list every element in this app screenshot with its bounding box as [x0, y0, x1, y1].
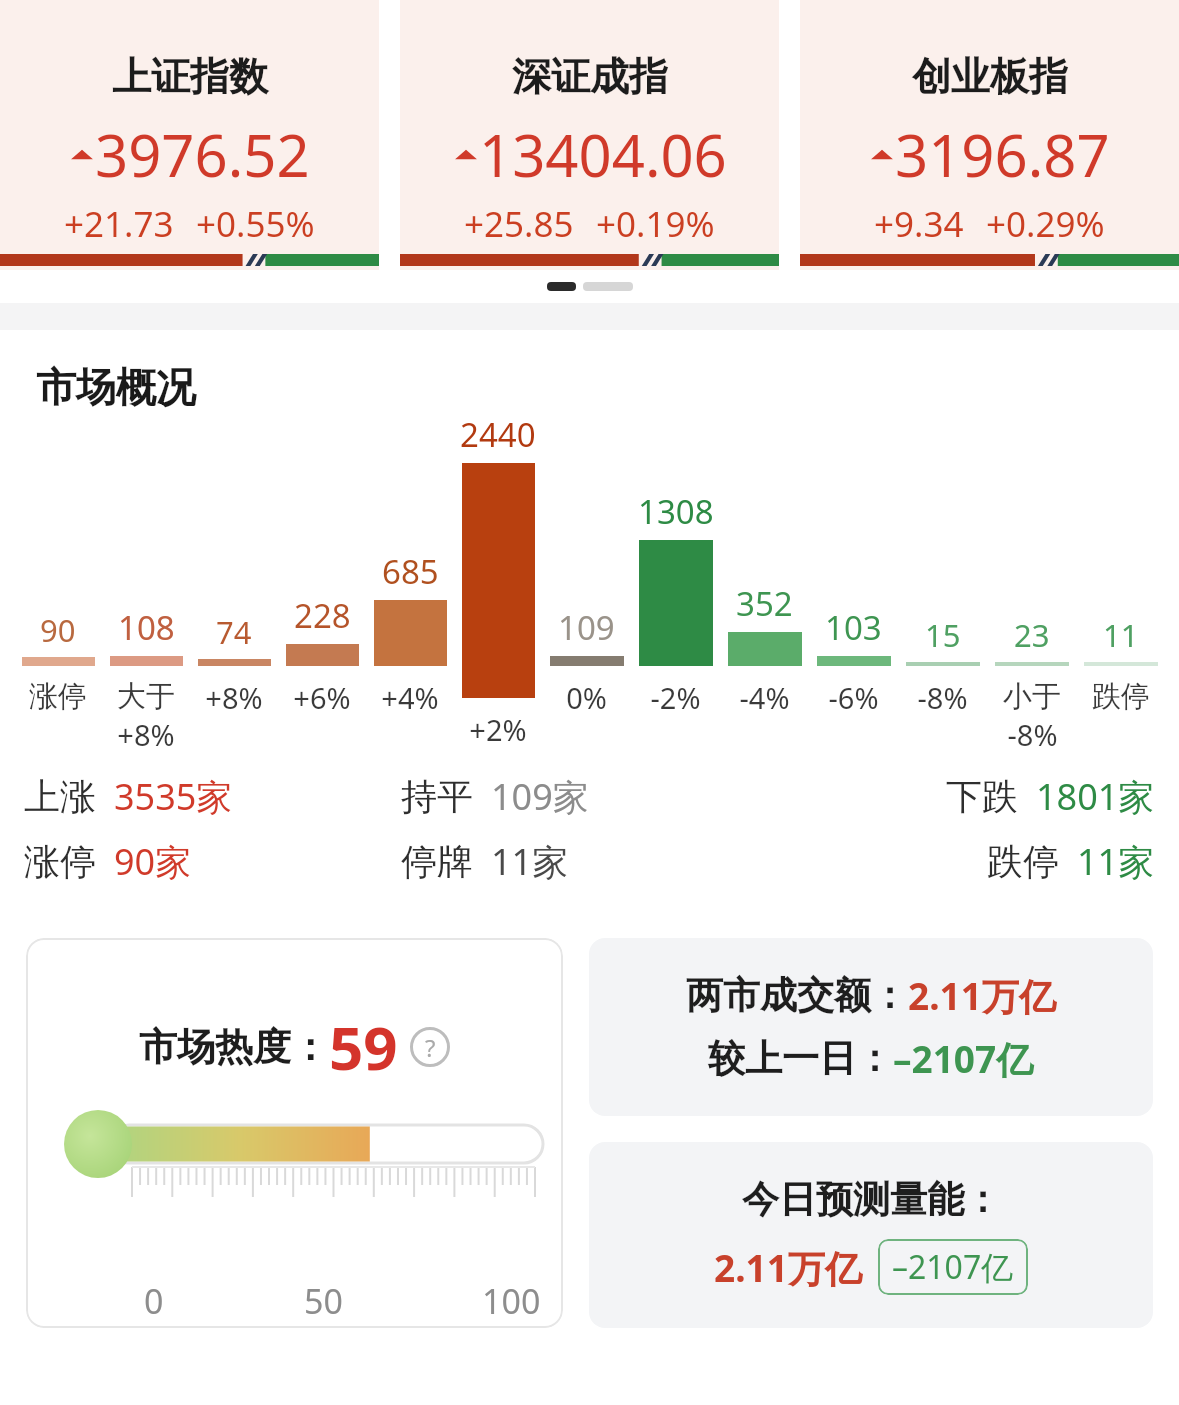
staticText: 3535家: [114, 772, 233, 821]
staticText: –2107亿: [893, 1033, 1034, 1084]
staticText: 上涨: [24, 774, 96, 819]
staticText: +25.85: [464, 200, 574, 248]
staticText: 深证成指: [512, 52, 668, 101]
staticText: -4%: [739, 678, 790, 717]
staticText: +0.55%: [196, 200, 315, 248]
staticText: +21.73: [64, 200, 174, 248]
staticText: 1801家: [1036, 772, 1155, 821]
button[interactable]: 创业板指: [800, 0, 1179, 270]
button[interactable]: 上证指数: [0, 0, 379, 270]
staticText: 103: [825, 605, 882, 650]
staticText: 0%: [566, 678, 607, 717]
staticText: 2440: [460, 412, 536, 457]
staticText: 涨停: [29, 678, 87, 715]
staticText: 352: [736, 581, 793, 626]
staticText: 90家: [114, 837, 192, 886]
staticText: 685: [382, 549, 439, 594]
staticText: -8%: [917, 678, 968, 717]
button[interactable]: 今日预测量能：: [589, 1142, 1153, 1328]
staticText: -2%: [650, 678, 701, 717]
staticText: 13404.06: [479, 115, 727, 194]
staticText: -6%: [828, 678, 879, 717]
staticText: 较上一日：: [708, 1035, 893, 1082]
staticText: 50: [304, 1278, 343, 1324]
staticText: 停牌: [401, 839, 473, 884]
staticText: +9.34: [874, 200, 964, 248]
staticText: 2.11万亿: [714, 1242, 862, 1293]
staticText: 11家: [491, 837, 569, 886]
staticText: 11: [1103, 614, 1139, 656]
staticText: 59: [329, 1006, 398, 1088]
staticText: 跌停: [1092, 678, 1150, 715]
button[interactable]: 市场热度：: [26, 938, 563, 1328]
staticText: 2.11万亿: [908, 970, 1056, 1021]
button[interactable]: 帮助: [410, 1027, 450, 1067]
staticText: 228: [294, 593, 351, 638]
staticText: 108: [118, 605, 175, 650]
staticText: 109: [558, 605, 615, 650]
staticText: 11家: [1077, 837, 1155, 886]
staticText: 涨停: [24, 839, 96, 884]
staticText: 今日预测量能：: [742, 1176, 1001, 1223]
staticText: +8%: [205, 678, 263, 717]
staticText: 创业板指: [912, 52, 1068, 101]
staticText: +0.19%: [596, 200, 715, 248]
button[interactable]: 深证成指: [400, 0, 779, 270]
staticText: 1308: [638, 489, 714, 534]
staticText: 15: [925, 614, 961, 656]
staticText: +2%: [469, 710, 527, 749]
staticText: 3976.52: [95, 115, 310, 194]
staticText: 两市成交额：: [686, 972, 908, 1019]
staticText: -8%: [1007, 715, 1058, 752]
staticText: 下跌: [946, 774, 1018, 819]
staticText: 109家: [491, 772, 589, 821]
staticText: 100: [482, 1278, 541, 1324]
staticText: 74: [216, 611, 252, 653]
staticText: +0.29%: [986, 200, 1105, 248]
staticText: +6%: [293, 678, 351, 717]
staticText: 小于: [1003, 678, 1061, 715]
staticText: 上证指数: [112, 52, 268, 101]
staticText: ?: [425, 1031, 436, 1064]
staticText: –2107亿: [892, 1245, 1014, 1289]
staticText: +8%: [117, 715, 175, 752]
staticText: 23: [1014, 614, 1050, 656]
staticText: +4%: [381, 678, 439, 717]
staticText: 3196.87: [895, 115, 1110, 194]
staticText: 0: [144, 1278, 164, 1324]
staticText: 持平: [401, 774, 473, 819]
staticText: 跌停: [987, 839, 1059, 884]
staticText: 大于: [117, 678, 175, 715]
staticText: 市场热度：: [139, 1023, 329, 1071]
staticText: 市场概况: [36, 362, 196, 412]
staticText: 90: [40, 609, 76, 651]
button[interactable]: 两市成交额：: [589, 938, 1153, 1116]
